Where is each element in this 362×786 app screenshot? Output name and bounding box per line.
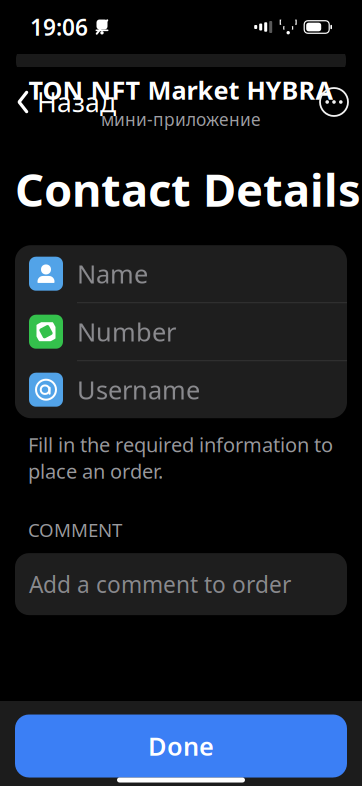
staticText: 19:06 xyxy=(30,12,88,42)
button[interactable]: Add a comment to order xyxy=(15,553,347,615)
button[interactable]: Number xyxy=(15,303,347,360)
button[interactable]: Done xyxy=(15,714,347,777)
staticText: Fill in the required information to plac… xyxy=(28,431,333,484)
button[interactable]: More options xyxy=(314,82,354,122)
button[interactable]: Назад xyxy=(8,76,124,128)
staticText: Назад xyxy=(37,84,116,120)
button[interactable]: Name xyxy=(15,245,347,302)
staticText: Contact Details xyxy=(15,159,361,219)
staticText: Username xyxy=(77,373,200,406)
staticText: мини-приложение xyxy=(101,108,261,131)
staticText: Name xyxy=(77,257,148,290)
staticText: Add a comment to order xyxy=(29,569,291,599)
staticText: Number xyxy=(77,315,176,348)
staticText: COMMENT xyxy=(28,517,122,542)
staticText: TON NFT Market HYBRA xyxy=(28,73,333,107)
button[interactable]: Username xyxy=(15,361,347,418)
staticText: Done xyxy=(148,729,214,763)
